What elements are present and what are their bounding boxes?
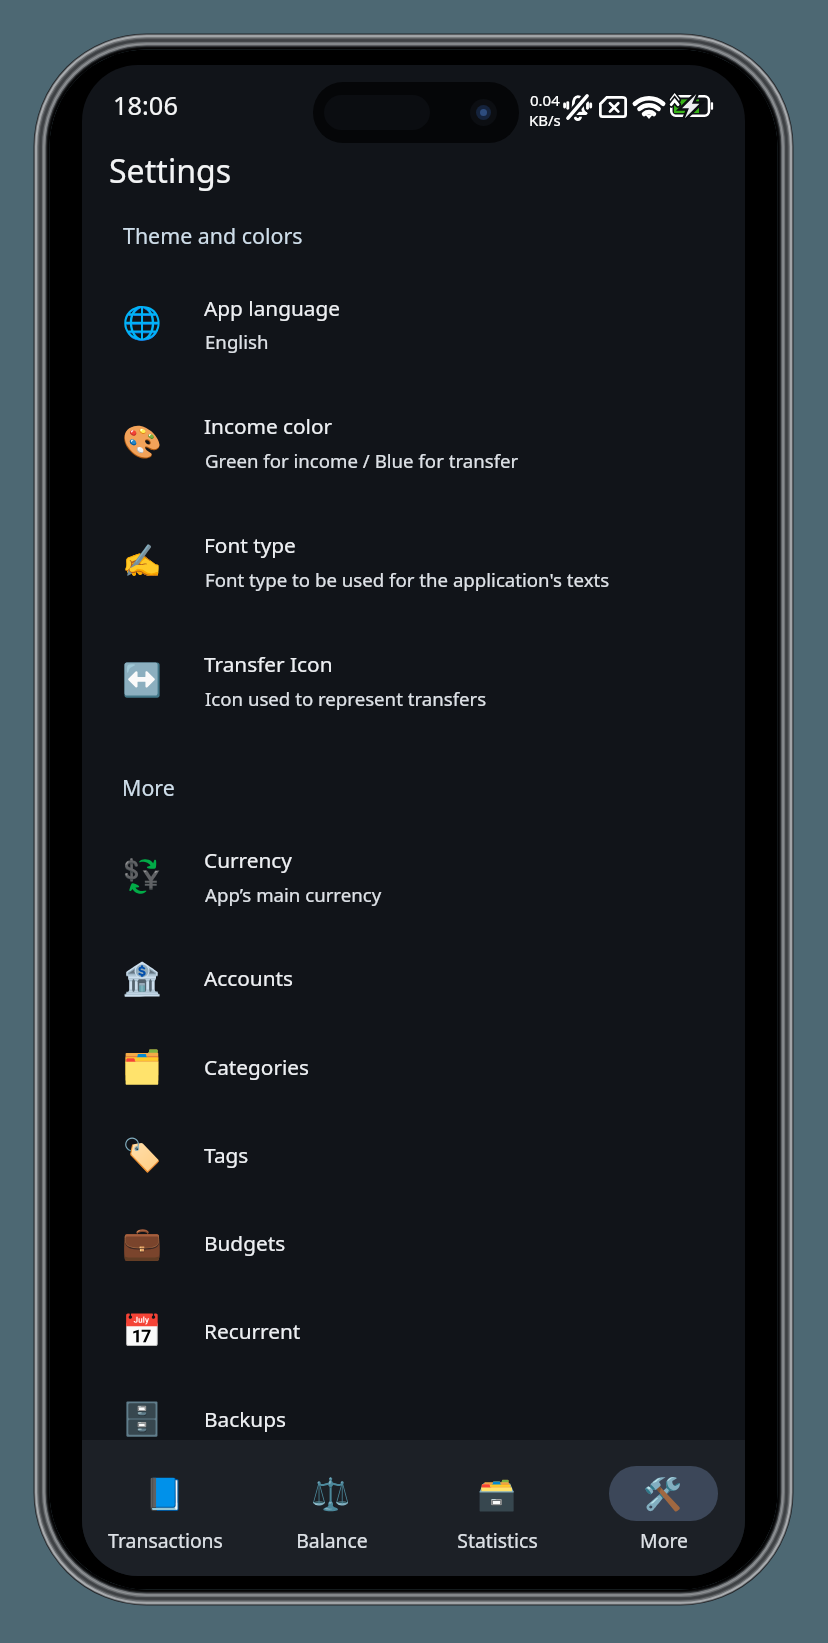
staticText: 🛠️ <box>643 1476 683 1513</box>
staticText: 💼 <box>122 1224 162 1262</box>
button[interactable] <box>82 1113 745 1201</box>
other: Silent mode <box>563 94 592 120</box>
staticText: 18:06 <box>113 88 178 123</box>
staticText: 📅 <box>122 1312 162 1350</box>
button[interactable] <box>82 1201 745 1289</box>
staticText: Currency <box>204 846 292 874</box>
button[interactable] <box>82 273 745 392</box>
staticText: Categories <box>204 1053 310 1081</box>
staticText: 🗃️ <box>477 1476 517 1513</box>
staticText: Income color <box>204 412 333 440</box>
button[interactable] <box>82 510 745 629</box>
staticText: Tags <box>204 1141 249 1169</box>
button[interactable] <box>82 1377 745 1465</box>
staticText: Transactions <box>108 1527 223 1553</box>
staticText: 🏷️ <box>122 1136 162 1174</box>
staticText: Green for income / Blue for transfer <box>205 448 519 473</box>
staticText: 🎨 <box>122 423 162 461</box>
button[interactable] <box>111 1466 220 1521</box>
other: Wi-Fi <box>634 96 664 119</box>
other: No SIM card <box>599 96 627 118</box>
staticText: More <box>122 773 175 802</box>
button[interactable] <box>82 937 745 1025</box>
staticText: 🏦 <box>122 960 162 998</box>
button[interactable] <box>443 1466 552 1521</box>
staticText: 🌐 <box>122 304 162 342</box>
staticText: ⚖️ <box>311 1476 351 1513</box>
staticText: Theme and colors <box>123 221 303 250</box>
button[interactable] <box>277 1466 386 1521</box>
staticText: 📘 <box>145 1476 185 1513</box>
staticText: Accounts <box>204 964 294 992</box>
other: Battery charging <box>670 95 716 117</box>
staticText: Transfer Icon <box>204 650 333 678</box>
staticText: Font type <box>204 531 296 559</box>
staticText: Balance <box>296 1527 368 1553</box>
staticText: 💱 <box>122 857 162 895</box>
button[interactable] <box>82 1025 745 1113</box>
staticText: 🗂️ <box>122 1048 162 1086</box>
button[interactable] <box>82 1289 745 1377</box>
staticText: ↔️ <box>122 661 162 699</box>
staticText: Icon used to represent transfers <box>205 686 487 711</box>
staticText: KB/s <box>529 110 561 130</box>
staticText: Font type to be used for the application… <box>205 567 610 592</box>
staticText: Statistics <box>457 1527 538 1553</box>
staticText: 🗄️ <box>122 1400 162 1438</box>
staticText: Budgets <box>204 1229 286 1257</box>
staticText: Recurrent <box>204 1317 301 1345</box>
staticText: App’s main currency <box>205 882 382 907</box>
staticText: More <box>640 1527 688 1553</box>
button[interactable] <box>82 392 745 511</box>
staticText: Settings <box>109 149 232 193</box>
staticText: App language <box>204 294 340 322</box>
staticText: 0.04 <box>530 90 560 110</box>
button[interactable] <box>82 825 745 944</box>
button[interactable] <box>82 629 745 748</box>
staticText: ✍️ <box>122 542 162 580</box>
staticText: Backups <box>204 1405 286 1433</box>
button[interactable] <box>609 1466 718 1521</box>
staticText: English <box>205 329 269 354</box>
